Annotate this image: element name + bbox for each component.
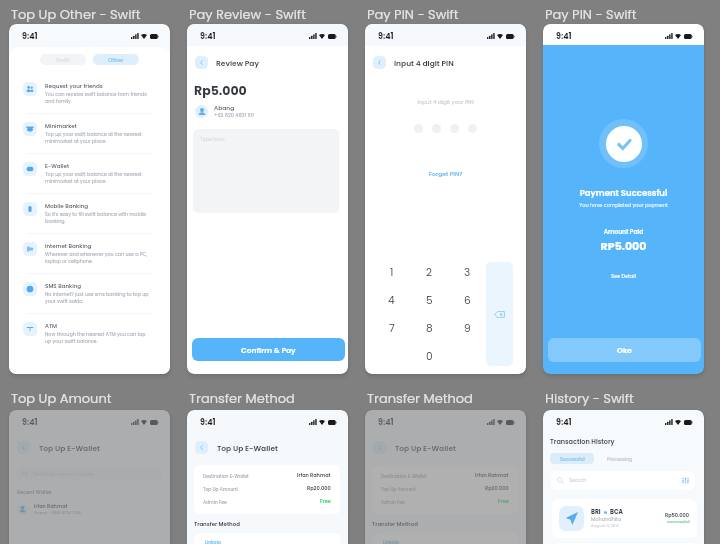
staticText: 9:41 (378, 31, 394, 42)
button[interactable]: Other (93, 54, 139, 65)
staticText: Linkaja (205, 539, 221, 544)
staticText: Payment Successful (543, 187, 704, 199)
staticText: Pay PIN - Swift (367, 5, 459, 23)
button[interactable]: 9 (448, 314, 486, 342)
staticText: Admin Fee (203, 499, 227, 505)
button[interactable]: 0 (410, 342, 448, 370)
button[interactable]: Oke (548, 338, 701, 362)
staticText: Transfer Method (194, 520, 240, 528)
button[interactable]: 4 (373, 286, 410, 314)
staticText: Internet Banking (45, 242, 92, 250)
staticText: Successful (560, 456, 585, 462)
button[interactable]: Search (551, 471, 695, 490)
staticText: Recent Wallet (17, 489, 52, 496)
staticText: Gopay - 0881 4754 1234 (34, 510, 81, 516)
button[interactable]: 1 (373, 258, 410, 286)
button[interactable]: Internet Banking (9, 234, 170, 273)
staticText: 9:41 (200, 31, 216, 42)
button[interactable]: Forget PIN? (365, 170, 526, 178)
staticText: 0 (426, 349, 433, 364)
staticText: You have completed your payment (543, 202, 704, 209)
button[interactable]: Mobile Banking (9, 194, 170, 233)
button[interactable]: 7 (373, 314, 410, 342)
staticText: Transfer Method (372, 520, 418, 528)
staticText: Mohandhita (591, 516, 622, 523)
staticText: Rp50.000 (665, 512, 690, 519)
staticText: Search by name or number (33, 471, 95, 477)
staticText: Transfer Method (189, 389, 295, 407)
button[interactable]: 8 (410, 314, 448, 342)
staticText: Processing (607, 456, 633, 462)
button[interactable]: Irfan Rahmat (9, 503, 170, 516)
button[interactable]: Request your friends (9, 74, 170, 113)
staticText: Pay PIN - Swift (545, 5, 637, 23)
button[interactable]: Confirm & Pay (192, 338, 345, 361)
staticText: 9:41 (556, 417, 572, 428)
staticText: 9:41 (200, 417, 216, 428)
staticText: Top Up E-Wallet (217, 443, 278, 453)
staticText: BCA (610, 508, 623, 516)
staticText: BRI (591, 508, 601, 516)
staticText: 8 (426, 321, 433, 336)
staticText: E-Wallet (45, 162, 70, 170)
button[interactable]: ATM (9, 314, 170, 353)
staticText: Forget PIN? (429, 170, 463, 178)
staticText: No internet? just use sms banking to top… (45, 291, 152, 305)
staticText: Minimarket (45, 122, 77, 130)
staticText: Pay Review - Swift (189, 5, 306, 23)
staticText: Top up your swift balance at the nearest… (45, 171, 152, 185)
staticText: 1 (390, 265, 394, 280)
staticText: Free (498, 498, 509, 505)
button[interactable]: Successful (550, 453, 594, 464)
button[interactable]: Minimarket (9, 114, 170, 153)
button[interactable]: Back (17, 441, 30, 454)
button[interactable]: See Detail (543, 273, 704, 280)
staticText: Top Up Amount (11, 389, 112, 407)
staticText: 7 (389, 321, 395, 336)
staticText: Abang (214, 104, 235, 112)
staticText: Top Up Amount (381, 486, 416, 492)
staticText: Search (569, 477, 587, 484)
button[interactable]: E-Wallet (9, 154, 170, 193)
button[interactable]: 2 (410, 258, 448, 286)
staticText: Irfan Rahmat (34, 503, 68, 510)
staticText: 9:41 (378, 417, 394, 428)
staticText: Request your friends (45, 82, 103, 90)
button[interactable]: 6 (448, 286, 486, 314)
staticText: 9:41 (22, 31, 38, 42)
staticText: August 11, 2021 (591, 523, 619, 529)
button[interactable]: SMS Banking (9, 274, 170, 313)
staticText: 4 (388, 293, 395, 308)
button[interactable]: Back (373, 441, 386, 454)
button[interactable]: BRI (552, 499, 697, 538)
staticText: Rp5.000 (194, 82, 247, 99)
button[interactable]: Back (373, 56, 386, 69)
staticText: So it's easy to fill swift balance with … (45, 211, 152, 225)
staticText: Irfan Rahmat (475, 472, 509, 479)
staticText: ATM (45, 322, 57, 330)
staticText: SMS Banking (45, 282, 82, 290)
staticText: 5 (426, 293, 433, 308)
button[interactable]: Backspace (486, 262, 513, 366)
staticText: 6 (464, 293, 471, 308)
button[interactable]: Swift (40, 54, 86, 65)
button[interactable]: Processing (607, 453, 633, 464)
staticText: Swift (56, 56, 70, 64)
staticText: Review Pay (216, 58, 259, 68)
staticText: Free (320, 498, 331, 505)
button[interactable]: 3 (448, 258, 486, 286)
button[interactable]: 5 (410, 286, 448, 314)
staticText: Rp20.000 (485, 485, 509, 492)
staticText: 9:41 (556, 31, 572, 42)
staticText: History - Swift (545, 389, 634, 407)
staticText: 2 (426, 265, 433, 280)
staticText: Top Up Other - Swift (11, 5, 141, 23)
button[interactable]: Back (195, 441, 208, 454)
staticText: Successful (667, 519, 690, 525)
button[interactable]: Back (195, 56, 208, 69)
